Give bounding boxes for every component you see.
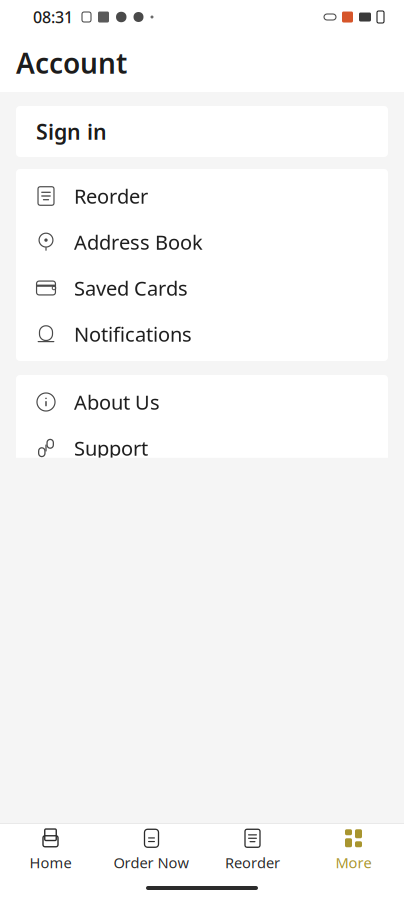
staticText: Saved Cards — [74, 275, 188, 301]
staticText: Order Now — [113, 853, 189, 872]
button[interactable]: Support — [16, 425, 388, 471]
staticText: Account — [16, 44, 127, 82]
button[interactable]: Reorder — [16, 173, 388, 219]
staticText: More — [335, 853, 371, 872]
staticText: About Us — [74, 389, 160, 415]
button[interactable]: Notifications — [16, 311, 388, 357]
button[interactable]: Order Now — [101, 826, 202, 874]
button[interactable]: Home — [0, 826, 101, 874]
staticText: Home — [29, 853, 71, 872]
staticText: Address Book — [74, 229, 203, 255]
staticText: Notifications — [74, 321, 192, 347]
staticText: 08:31 — [33, 6, 73, 28]
button[interactable]: About Us — [16, 379, 388, 425]
button[interactable]: Saved Cards — [16, 265, 388, 311]
staticText: Support — [74, 435, 148, 461]
button[interactable]: Reorder — [202, 826, 303, 874]
button[interactable]: More — [303, 826, 404, 874]
staticText: Reorder — [225, 853, 280, 872]
button[interactable]: Address Book — [16, 219, 388, 265]
button[interactable]: Sign in — [16, 106, 388, 157]
staticText: Sign in — [36, 117, 107, 146]
staticText: Reorder — [74, 183, 148, 209]
